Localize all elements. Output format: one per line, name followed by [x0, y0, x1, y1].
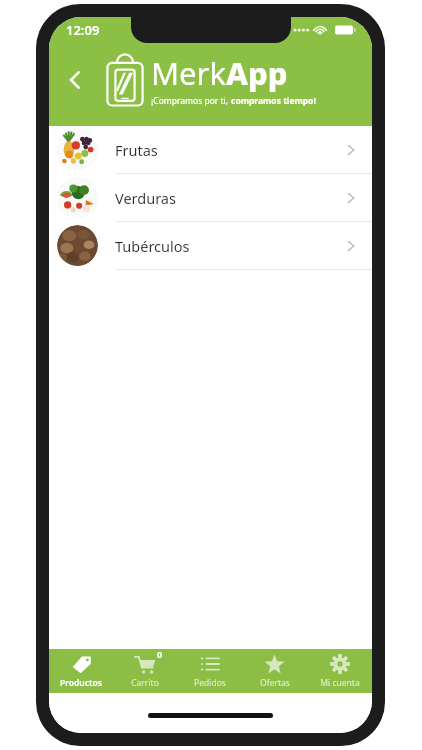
- staticText: compramos tiempo!: [231, 95, 316, 107]
- staticText: Verduras: [115, 188, 176, 208]
- button[interactable]: Frutas: [49, 126, 372, 174]
- staticText: Tubérculos: [115, 236, 190, 256]
- button[interactable]: Back: [53, 58, 97, 102]
- button[interactable]: Productos: [49, 649, 113, 693]
- staticText: Mi cuenta: [320, 677, 360, 689]
- button[interactable]: Pedidos: [177, 649, 242, 693]
- staticText: Ofertas: [260, 677, 290, 689]
- staticText: 12:09: [66, 21, 100, 39]
- button[interactable]: Verduras: [49, 174, 372, 222]
- staticText: Merk: [151, 52, 226, 94]
- staticText: ¡Compramos por ti,: [151, 95, 231, 107]
- staticText: Carrito: [131, 677, 159, 689]
- button[interactable]: Tubérculos: [49, 222, 372, 270]
- staticText: Productos: [60, 677, 102, 689]
- staticText: 0: [157, 648, 163, 660]
- staticText: Pedidos: [194, 677, 226, 689]
- button[interactable]: 0: [113, 649, 177, 693]
- button[interactable]: Mi cuenta: [307, 649, 372, 693]
- staticText: Frutas: [115, 140, 158, 160]
- staticText: App: [226, 52, 288, 94]
- button[interactable]: Ofertas: [242, 649, 307, 693]
